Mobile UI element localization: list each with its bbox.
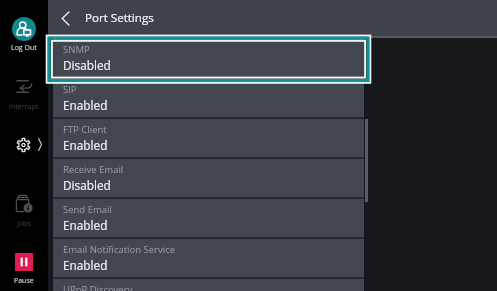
staticText: Email Notification Service [63, 243, 175, 256]
staticText: Pause [14, 276, 34, 286]
staticText: Enabled [63, 137, 108, 153]
staticText: Send Email [63, 203, 112, 216]
staticText: Jobs [17, 219, 31, 229]
staticText: Disabled [63, 57, 111, 73]
staticText: SIP [63, 83, 77, 96]
button[interactable]: UPnP Discovery [53, 277, 364, 291]
button[interactable]: Settings [14, 134, 44, 155]
button[interactable]: Pause [2, 250, 46, 288]
staticText: Interrupt [9, 102, 39, 112]
staticText: SNMP [63, 43, 90, 56]
button[interactable]: Receive Email [53, 157, 364, 197]
staticText: Enabled [63, 217, 108, 233]
staticText: FTP Client [63, 123, 107, 136]
button[interactable]: Send Email [53, 197, 364, 237]
button[interactable]: SNMP [53, 37, 364, 77]
button[interactable]: Jobs [2, 192, 46, 227]
button[interactable]: Back [55, 4, 75, 33]
button[interactable]: Email Notification Service [53, 237, 364, 277]
button[interactable]: FTP Client [53, 117, 364, 157]
staticText: Port Settings [85, 10, 154, 26]
button[interactable]: Interrupt [2, 77, 46, 111]
staticText: UPnP Discovery [63, 283, 133, 291]
staticText: Enabled [63, 97, 108, 113]
button[interactable]: Log Out [2, 12, 46, 56]
button[interactable]: SIP [53, 77, 364, 117]
staticText: Receive Email [63, 163, 124, 176]
staticText: Log Out [11, 43, 37, 53]
staticText: Disabled [63, 177, 111, 193]
staticText: Enabled [63, 257, 108, 273]
